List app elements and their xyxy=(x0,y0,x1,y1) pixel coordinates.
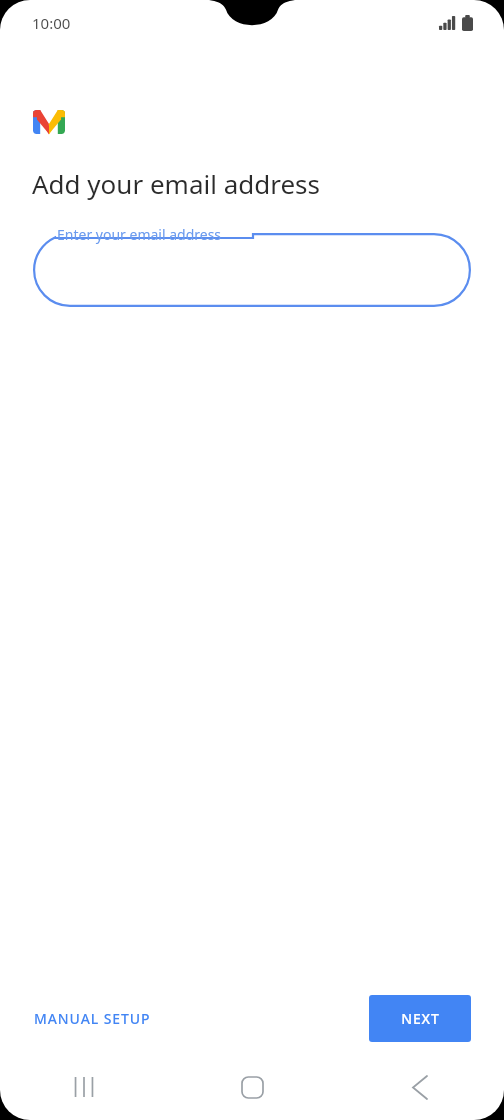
button[interactable]: NEXT xyxy=(369,995,471,1042)
staticText: Enter your email address xyxy=(57,225,222,244)
button[interactable]: Recent apps xyxy=(0,1064,168,1110)
button[interactable]: MANUAL SETUP xyxy=(32,1001,153,1036)
staticText: 10:00 xyxy=(32,13,71,33)
staticText: MANUAL SETUP xyxy=(34,1009,151,1028)
button[interactable]: Back xyxy=(336,1064,504,1110)
staticText: NEXT xyxy=(401,1009,440,1028)
button[interactable]: Email address input xyxy=(33,223,471,307)
staticText: Add your email address xyxy=(32,166,321,201)
button[interactable]: Home xyxy=(168,1064,336,1110)
